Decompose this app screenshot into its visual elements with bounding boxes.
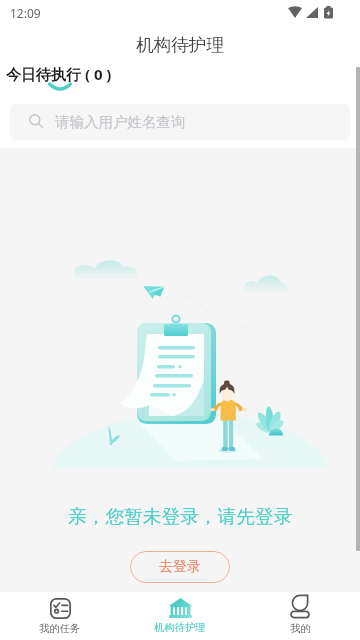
staticText: 机构待护理 [136,34,224,56]
staticText: 12:09 [10,5,41,21]
staticText: 今日待执行 ( 0 ) [6,64,112,84]
staticText: 亲，您暂未登录，请先登录 [68,505,293,529]
button[interactable]: 机构待护理 [120,592,240,640]
button[interactable]: 我的任务 [0,592,120,640]
staticText: 我的任务 [39,622,81,635]
button[interactable]: 请输入用户姓名查询 [10,104,350,140]
button[interactable]: 去登录 [130,551,230,583]
button[interactable]: 我的 [240,592,360,640]
staticText: 我的 [290,622,311,635]
staticText: 去登录 [159,558,201,576]
staticText: 机构待护理 [154,621,206,634]
staticText: 请输入用户姓名查询 [55,113,186,131]
